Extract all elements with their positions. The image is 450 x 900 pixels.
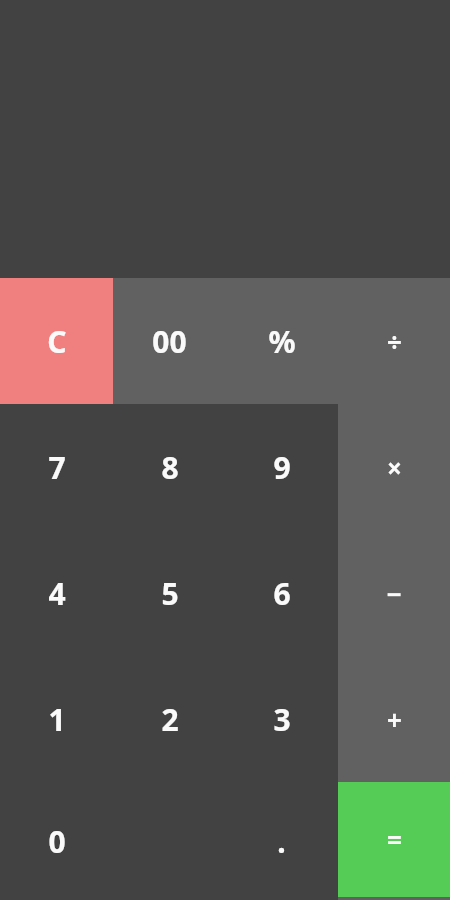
button[interactable]: 0 <box>0 782 225 900</box>
button[interactable]: 00 <box>113 278 226 404</box>
button[interactable]: Equals <box>338 782 450 897</box>
staticText: 9 <box>273 447 291 488</box>
staticText: C <box>47 321 67 362</box>
staticText: 4 <box>48 573 66 614</box>
button[interactable]: Decimal point <box>225 782 338 900</box>
button[interactable]: 7 <box>0 404 113 530</box>
staticText: 0 <box>48 821 66 862</box>
button[interactable]: 4 <box>0 530 113 656</box>
button[interactable]: 9 <box>226 404 338 530</box>
button[interactable]: 6 <box>226 530 338 656</box>
staticText: + <box>387 702 402 737</box>
staticText: ÷ <box>387 324 402 359</box>
staticText: 1 <box>48 699 66 740</box>
button[interactable]: 8 <box>113 404 226 530</box>
button[interactable]: % <box>226 278 338 404</box>
button[interactable]: C <box>0 278 113 404</box>
staticText: 8 <box>161 447 179 488</box>
staticText: = <box>387 822 402 857</box>
button[interactable]: 5 <box>113 530 226 656</box>
staticText: 3 <box>273 699 291 740</box>
staticText: × <box>387 450 402 485</box>
button[interactable]: Divide <box>338 278 450 404</box>
staticText: 2 <box>161 699 179 740</box>
staticText: . <box>277 821 286 862</box>
button[interactable]: 2 <box>113 656 226 782</box>
button[interactable]: Multiply <box>338 404 450 530</box>
staticText: 6 <box>273 573 291 614</box>
button[interactable]: 1 <box>0 656 113 782</box>
staticText: 5 <box>161 573 179 614</box>
button[interactable]: Subtract <box>338 530 450 656</box>
staticText: 7 <box>48 447 66 488</box>
button[interactable]: 3 <box>226 656 338 782</box>
staticText: % <box>268 321 296 362</box>
staticText: 00 <box>152 321 187 362</box>
staticText: − <box>386 576 402 611</box>
button[interactable]: Add <box>338 656 450 782</box>
